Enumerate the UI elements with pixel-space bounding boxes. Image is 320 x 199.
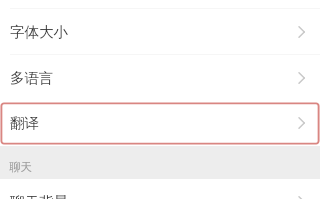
staticText: 翻译 <box>10 114 296 132</box>
staticText: 聊天背景 <box>10 193 296 199</box>
button[interactable]: 多语言 <box>0 55 320 101</box>
button[interactable]: 翻译 <box>0 102 320 145</box>
staticText: 多语言 <box>10 69 296 87</box>
staticText: 聊天 <box>9 160 32 174</box>
button[interactable]: 聊天背景 <box>0 179 320 199</box>
button[interactable]: 字体大小 <box>0 9 320 55</box>
staticText: 字体大小 <box>10 23 296 41</box>
